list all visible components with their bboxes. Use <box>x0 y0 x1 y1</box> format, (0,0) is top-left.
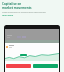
staticText: Trade thousands of markets with tight sp… <box>2 11 46 14</box>
button[interactable]: Sell <box>6 64 31 68</box>
staticText: Capitalise on market movements <box>2 2 32 10</box>
button[interactable]: Learn more <box>2 14 14 17</box>
button[interactable]: Buy <box>33 64 58 68</box>
